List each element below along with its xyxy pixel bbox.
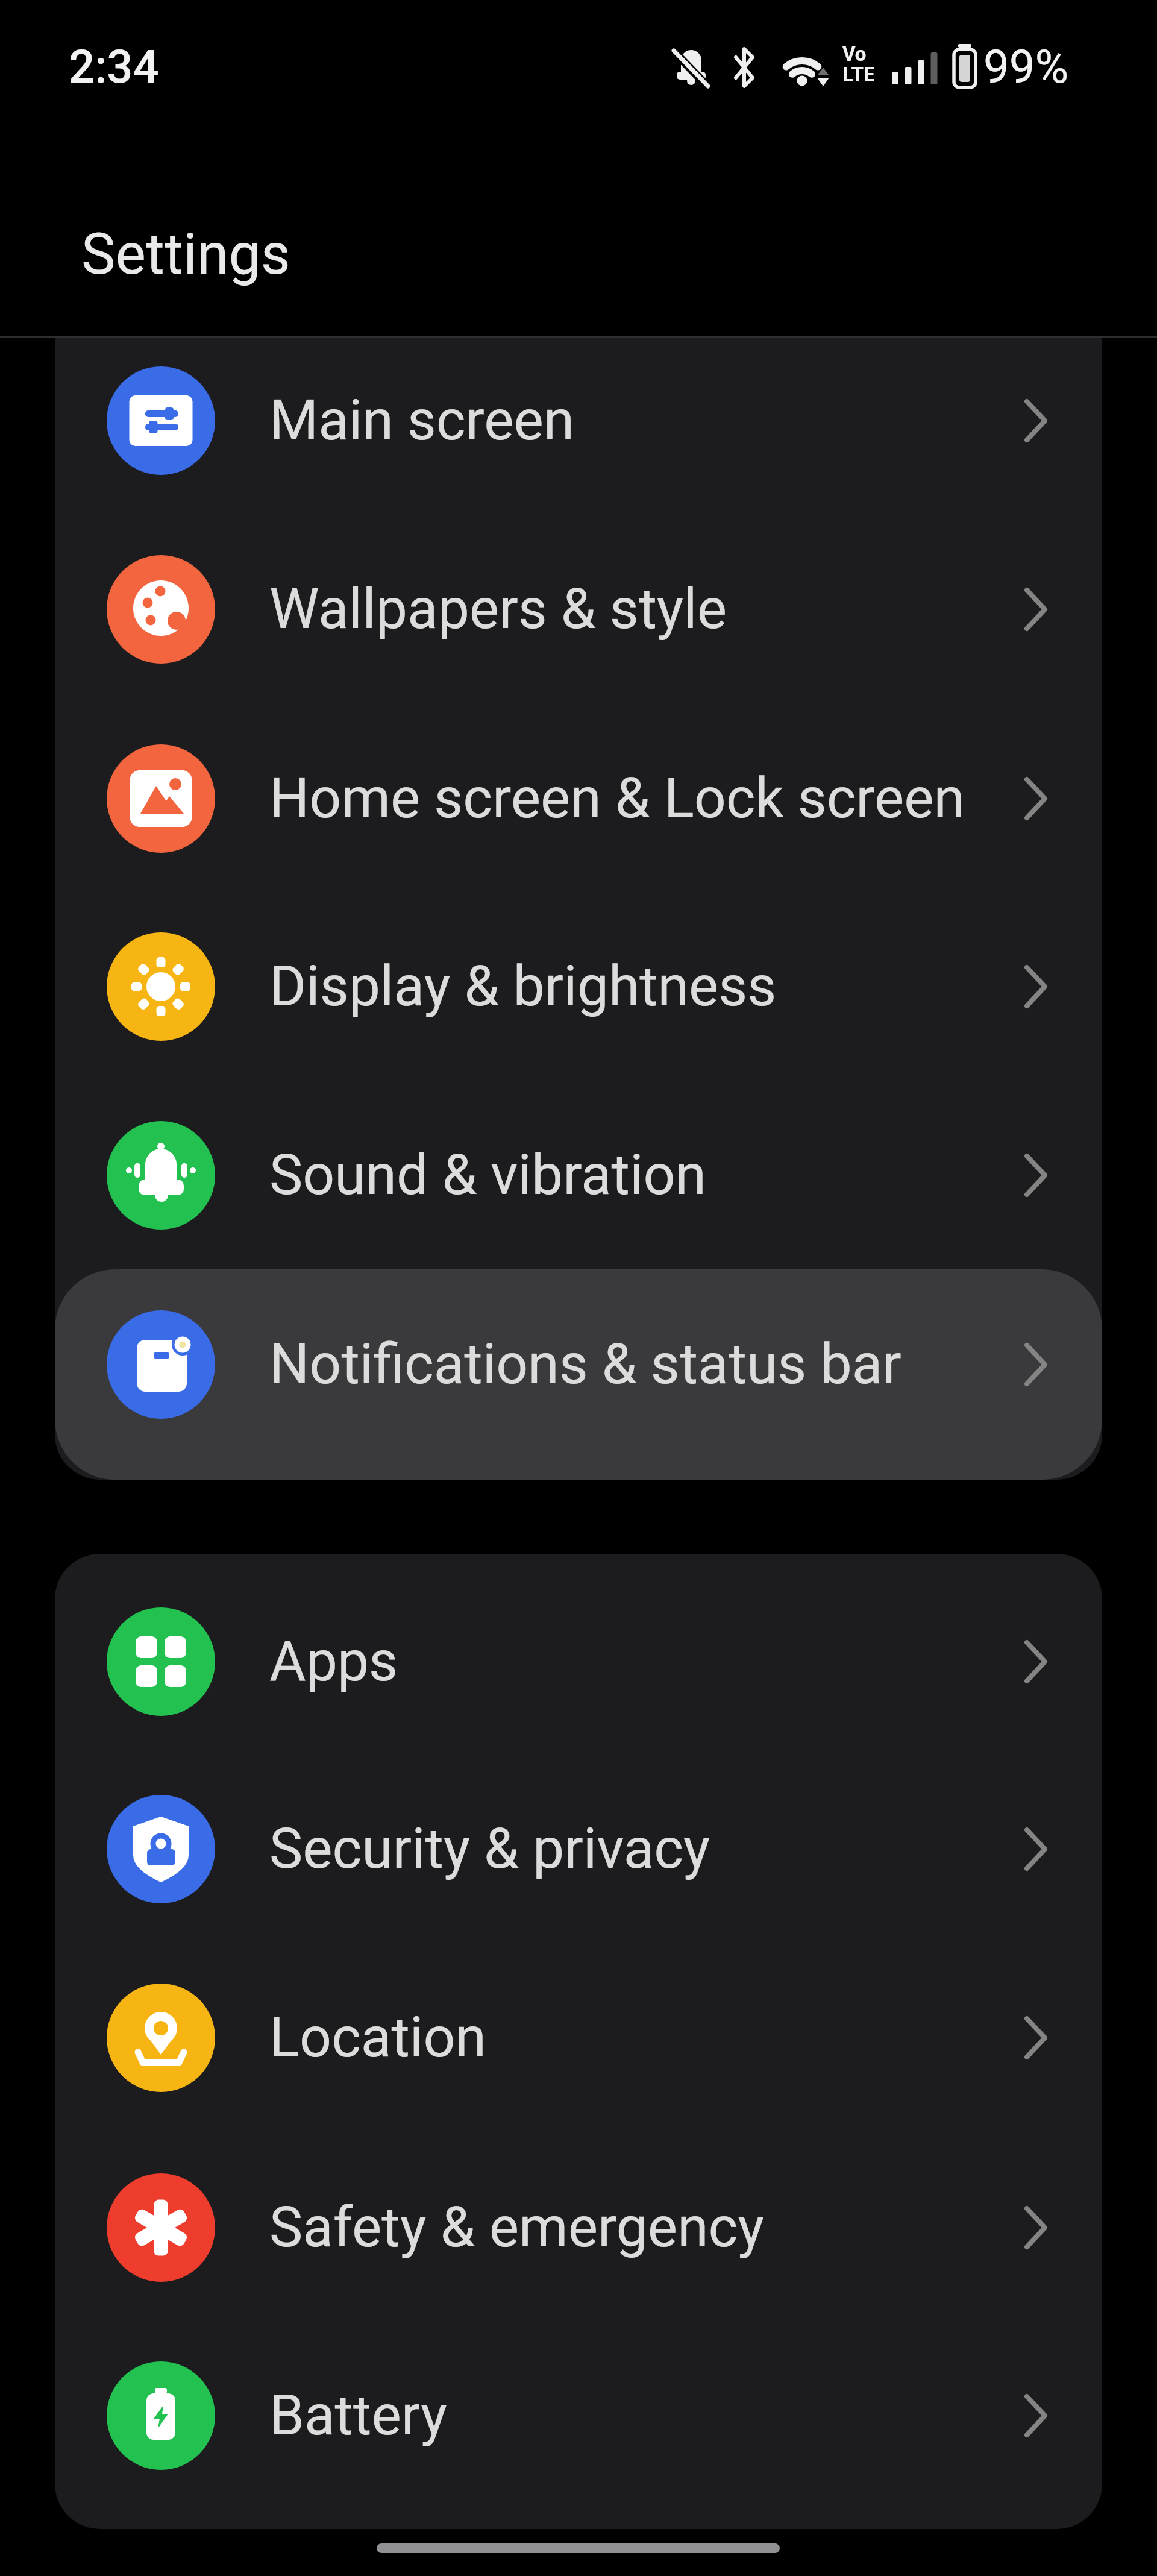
staticText: Location bbox=[269, 2005, 486, 2070]
staticText: Safety & emergency bbox=[269, 2194, 765, 2260]
button[interactable]: Apps bbox=[55, 1567, 1102, 1756]
staticText: Battery bbox=[269, 2383, 448, 2448]
button[interactable]: Wallpapers & style bbox=[55, 515, 1102, 703]
button[interactable]: Security & privacy bbox=[55, 1755, 1102, 1943]
staticText: Vo bbox=[842, 42, 867, 66]
staticText: 2:34 bbox=[69, 40, 159, 93]
button[interactable]: Display & brightness bbox=[55, 892, 1102, 1081]
staticText: Notifications & status bar bbox=[269, 1331, 901, 1397]
staticText: Apps bbox=[269, 1629, 398, 1694]
staticText: Settings bbox=[81, 221, 290, 287]
button[interactable]: Battery bbox=[55, 2321, 1102, 2510]
staticText: Security & privacy bbox=[269, 1816, 710, 1882]
staticText: 99% bbox=[983, 40, 1069, 93]
staticText: Main screen bbox=[269, 388, 575, 453]
button[interactable]: Sound & vibration bbox=[55, 1081, 1102, 1269]
button[interactable]: Location bbox=[55, 1943, 1102, 2132]
staticText: Wallpapers & style bbox=[269, 576, 727, 642]
button[interactable] bbox=[55, 1269, 1102, 1480]
button[interactable]: Main screen bbox=[55, 326, 1102, 515]
button[interactable]: Notifications & status bar bbox=[55, 1270, 1102, 1459]
staticText: Home screen & Lock screen bbox=[269, 765, 965, 831]
staticText: Display & brightness bbox=[269, 953, 777, 1019]
staticText: LTE bbox=[842, 63, 875, 86]
button[interactable]: Home screen & Lock screen bbox=[55, 704, 1102, 893]
staticText: Sound & vibration bbox=[269, 1142, 706, 1208]
button[interactable]: Safety & emergency bbox=[55, 2133, 1102, 2322]
